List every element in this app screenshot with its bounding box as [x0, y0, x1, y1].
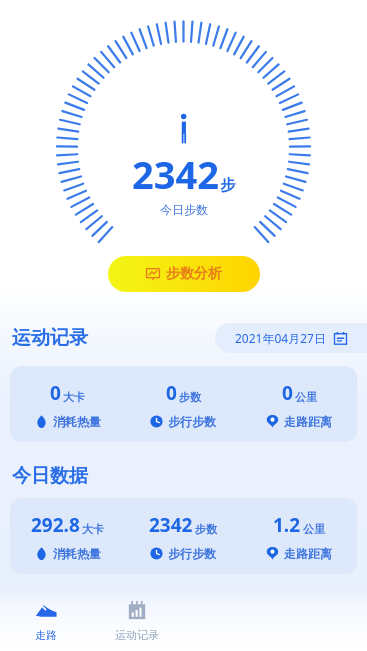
staticText: 0 [50, 380, 61, 406]
staticText: 公里 [303, 522, 325, 536]
staticText: 今日步数 [160, 202, 208, 217]
staticText: 2342 [132, 148, 219, 200]
staticText: 消耗热量 [53, 414, 101, 429]
staticText: 2021年04月27日 [235, 330, 326, 346]
staticText: 步数 [195, 522, 217, 536]
other: Select date [333, 331, 348, 346]
staticText: 走路 [35, 628, 57, 642]
button[interactable]: 0 [10, 366, 357, 442]
staticText: 步行步数 [168, 414, 216, 429]
staticText: 步数 [179, 390, 201, 404]
staticText: 走路距离 [284, 414, 332, 429]
staticText: 步数分析 [166, 265, 222, 283]
staticText: 公里 [295, 390, 317, 404]
staticText: 消耗热量 [53, 546, 101, 561]
button[interactable]: 走路 [0, 589, 91, 651]
staticText: 步行步数 [168, 546, 216, 561]
staticText: 1.2 [273, 512, 301, 538]
staticText: 步 [220, 176, 235, 195]
staticText: 走路距离 [284, 546, 332, 561]
button[interactable]: 运动记录 [91, 589, 183, 651]
staticText: 2342 [149, 512, 193, 538]
staticText: 大卡 [63, 390, 85, 404]
staticText: 运动记录 [12, 326, 88, 350]
staticText: 0 [166, 380, 177, 406]
staticText: 运动记录 [115, 628, 159, 642]
button[interactable]: 步数分析 [108, 256, 260, 292]
button[interactable]: 292.8 [10, 498, 357, 574]
staticText: 今日数据 [12, 464, 88, 488]
staticText: 大卡 [82, 522, 104, 536]
staticText: 292.8 [31, 512, 80, 538]
button[interactable]: 2021年04月27日 [215, 323, 367, 353]
staticText: 0 [282, 380, 293, 406]
